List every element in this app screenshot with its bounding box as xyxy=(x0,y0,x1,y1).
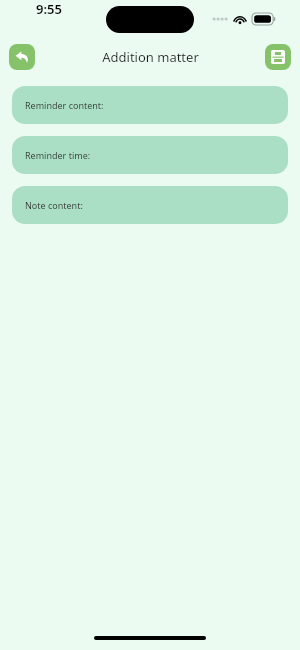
staticText: Addition matter xyxy=(102,48,199,66)
staticText: Reminder content: xyxy=(25,99,104,111)
staticText: 9:55 xyxy=(36,0,62,18)
button[interactable]: Save xyxy=(265,44,291,70)
staticText: Reminder time: xyxy=(25,149,91,161)
button[interactable]: Reminder content: xyxy=(12,86,288,124)
button[interactable]: Back xyxy=(9,44,35,70)
staticText: Note content: xyxy=(25,199,83,211)
button[interactable]: Reminder time: xyxy=(12,136,288,174)
button[interactable]: Note content: xyxy=(12,186,288,224)
